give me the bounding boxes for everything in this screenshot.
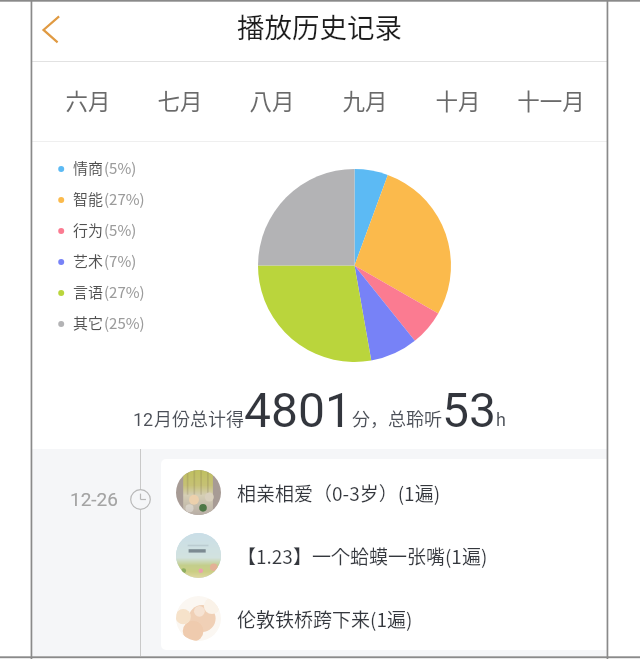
staticText: 言语 (73, 281, 104, 303)
staticText: 12-26 (70, 488, 118, 510)
staticText: (7%) (104, 250, 137, 272)
button[interactable]: 智能 (52, 184, 145, 215)
staticText: 月份总计得 (154, 405, 244, 431)
staticText: 分，总聆听 (352, 405, 442, 431)
button[interactable]: 十月 (411, 62, 504, 141)
button[interactable]: 【1.23】一个蛤蟆一张嘴(1遍) (161, 524, 640, 587)
staticText: 七月 (157, 84, 203, 117)
staticText: 【1.23】一个蛤蟆一张嘴(1遍) (237, 542, 488, 570)
button[interactable]: 艺术 (52, 246, 137, 277)
button[interactable]: 伦敦铁桥跨下来(1遍) (161, 587, 640, 650)
button[interactable]: 六月 (42, 62, 134, 141)
staticText: 十月 (435, 84, 481, 117)
button[interactable]: 十一月 (504, 62, 597, 141)
button[interactable]: Back (32, 1, 82, 61)
staticText: 相亲相爱（0-3岁）(1遍) (237, 479, 441, 507)
button[interactable]: 行为 (52, 215, 137, 246)
staticText: 53 (442, 382, 496, 438)
staticText: (27%) (104, 188, 145, 210)
button[interactable]: 其它 (52, 308, 145, 339)
button[interactable]: 八月 (226, 62, 318, 141)
staticText: 十一月 (517, 84, 585, 117)
staticText: (27%) (104, 281, 145, 303)
staticText: 伦敦铁桥跨下来(1遍) (237, 605, 413, 633)
staticText: 4801 (244, 382, 352, 438)
staticText: (5%) (104, 219, 137, 241)
button[interactable]: 九月 (318, 62, 411, 141)
staticText: 六月 (65, 84, 111, 117)
staticText: 其它 (73, 312, 104, 334)
staticText: (25%) (104, 312, 145, 334)
staticText: 艺术 (73, 250, 104, 272)
button[interactable]: 言语 (52, 277, 145, 308)
staticText: h (496, 409, 506, 430)
staticText: 八月 (249, 84, 295, 117)
button[interactable]: 七月 (134, 62, 226, 141)
staticText: 智能 (73, 188, 104, 210)
button[interactable]: 情商 (52, 153, 137, 184)
staticText: (5%) (104, 157, 137, 179)
staticText: 情商 (73, 157, 104, 179)
staticText: 12 (133, 409, 154, 430)
staticText: 九月 (342, 84, 388, 117)
staticText: 播放历史记录 (237, 6, 402, 46)
staticText: 行为 (73, 219, 104, 241)
button[interactable]: 相亲相爱（0-3岁）(1遍) (161, 461, 640, 524)
